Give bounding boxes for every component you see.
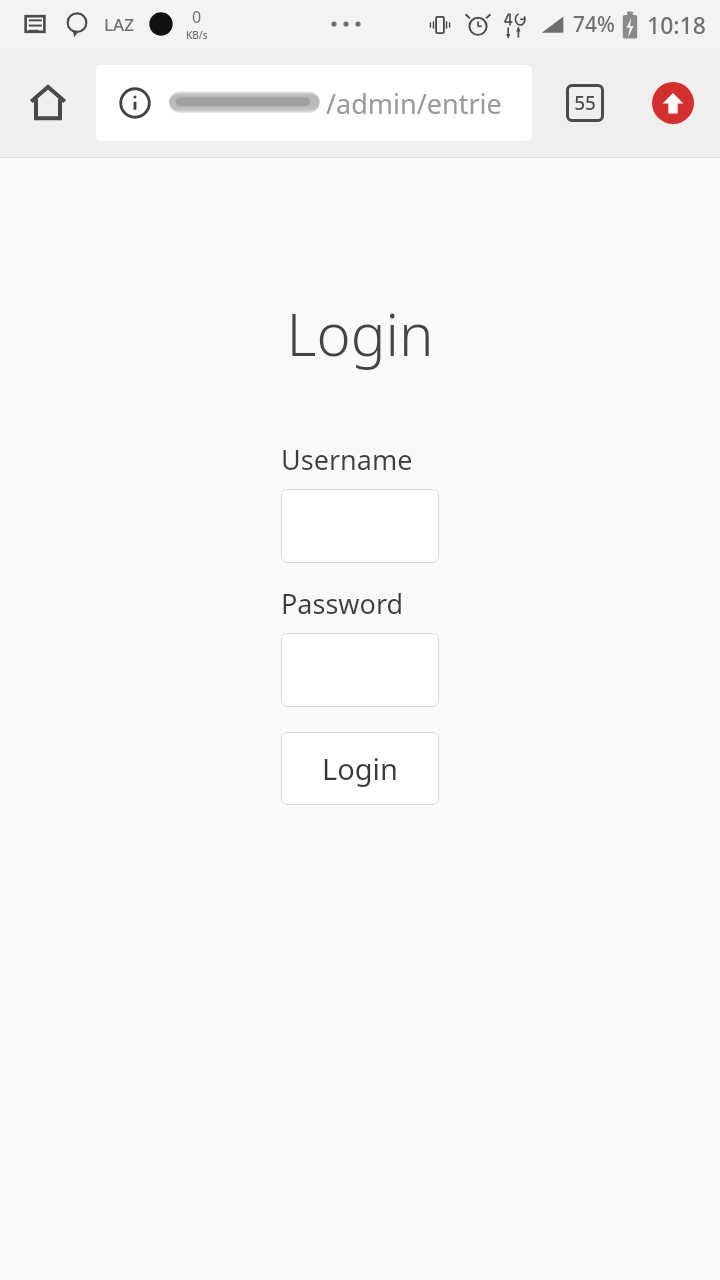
staticText: Username — [281, 441, 413, 478]
button[interactable]: /admin/entrie — [96, 65, 532, 141]
staticText: KB/s — [186, 28, 208, 42]
staticText: 0 — [192, 6, 202, 28]
staticText: Login — [322, 749, 398, 788]
staticText: 10:18 — [647, 9, 706, 40]
staticText: LAZ — [104, 13, 134, 36]
button[interactable]: Login — [281, 732, 439, 805]
button[interactable]: Upload — [640, 70, 706, 136]
button[interactable]: Tabs — [552, 70, 618, 136]
staticText: Password — [281, 585, 404, 622]
staticText: /admin/entrie — [326, 85, 502, 122]
button[interactable]: Password field — [281, 633, 439, 707]
button[interactable]: Username field — [281, 489, 439, 563]
button[interactable]: Home — [14, 69, 82, 137]
staticText: Login — [0, 294, 720, 373]
staticText: 74% — [573, 10, 615, 39]
staticText: 55 — [574, 90, 596, 116]
